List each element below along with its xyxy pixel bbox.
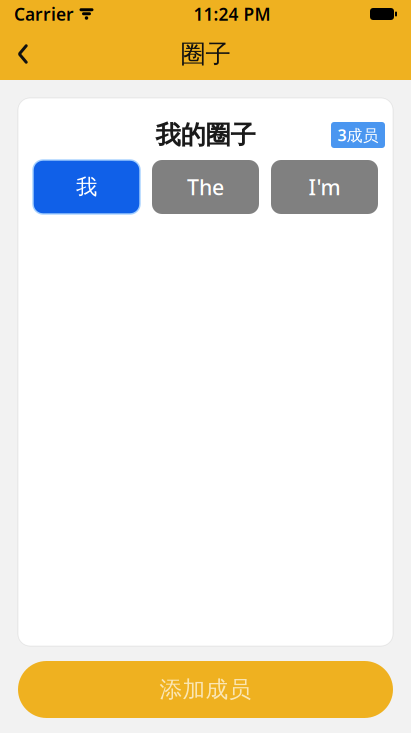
button[interactable]: 3成员 xyxy=(331,122,385,148)
button[interactable]: I'm xyxy=(271,160,378,214)
staticText: I'm xyxy=(308,173,340,201)
staticText: 圈子 xyxy=(180,38,230,69)
staticText: 11:24 PM xyxy=(193,2,270,25)
staticText: Carrier xyxy=(14,2,74,25)
button[interactable]: 我 xyxy=(33,160,140,214)
button[interactable]: The xyxy=(152,160,259,214)
staticText: 添加成员 xyxy=(159,676,251,703)
staticText: 3成员 xyxy=(337,124,378,146)
staticText: 我 xyxy=(76,174,97,200)
staticText: 我的圈子 xyxy=(155,119,255,150)
button[interactable]: 返回 xyxy=(0,28,46,80)
staticText: The xyxy=(187,173,224,201)
button[interactable]: 添加成员 xyxy=(18,661,393,718)
